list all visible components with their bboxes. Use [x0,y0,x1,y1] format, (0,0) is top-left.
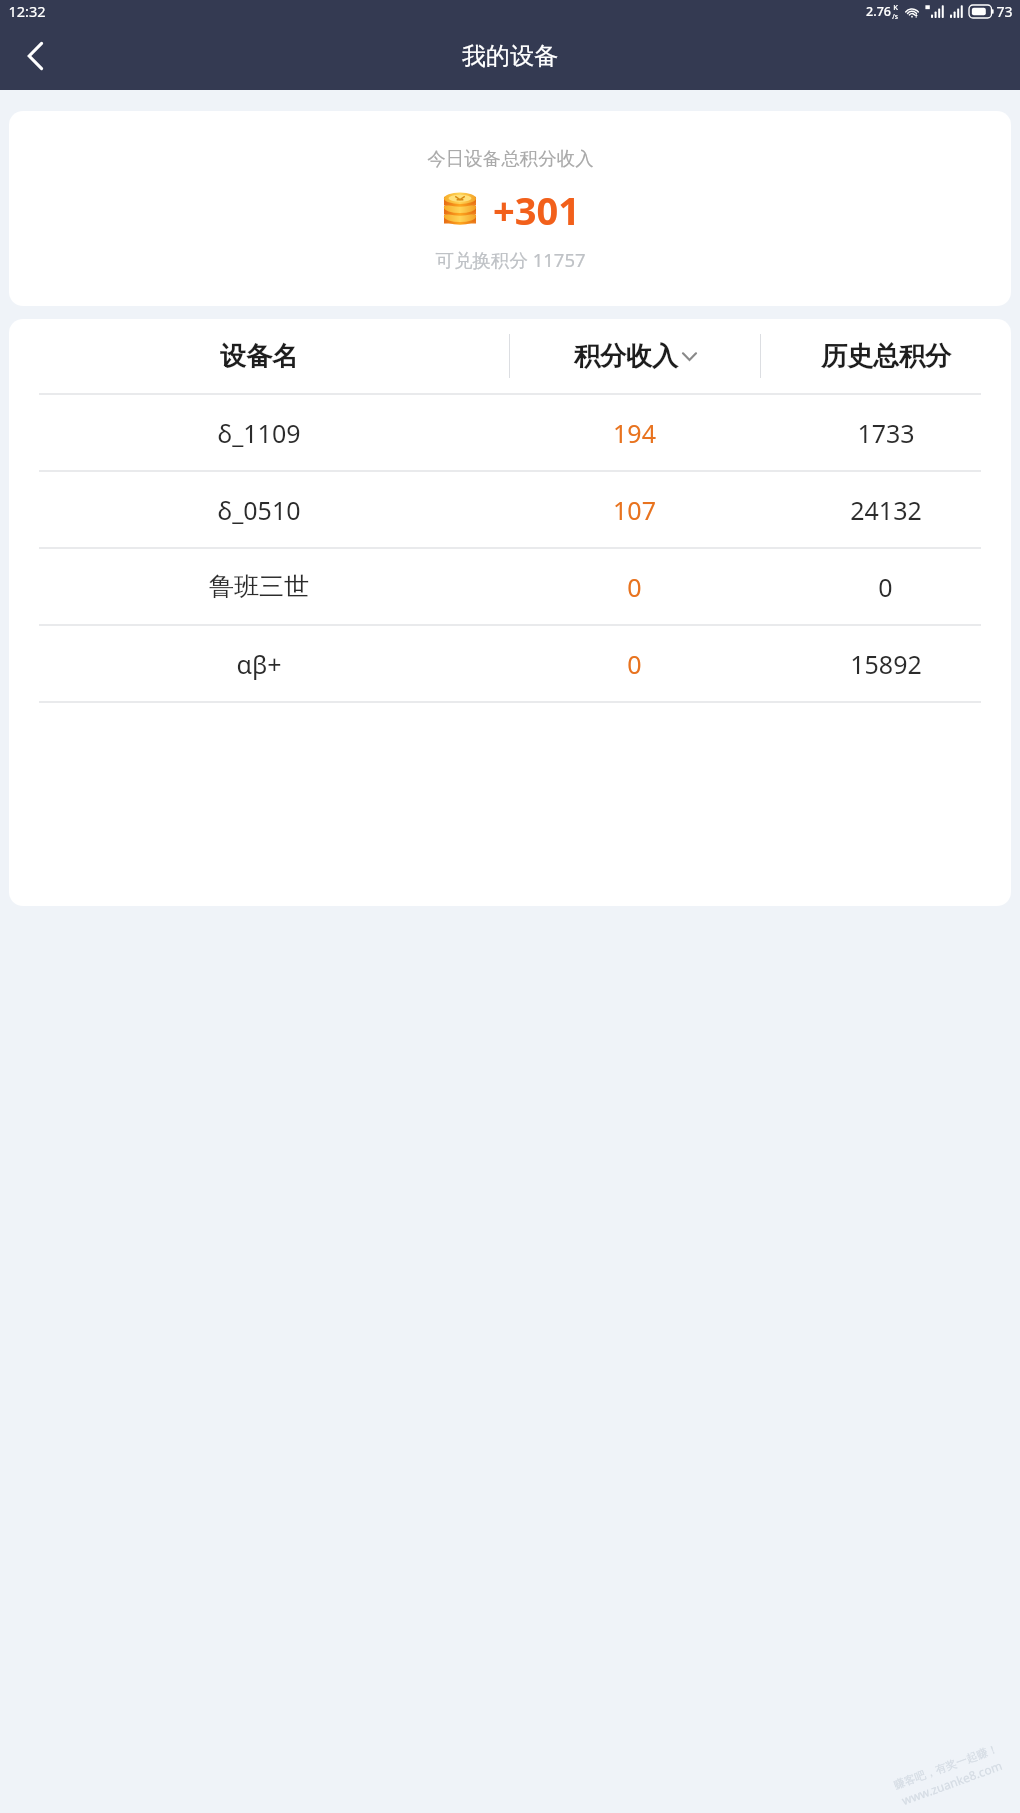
button[interactable]: αβ+ [9,626,1011,701]
button[interactable]: 今日设备总积分收入 [9,111,1011,306]
staticText: 我的设备 [462,41,558,71]
staticText: 鲁班三世 [209,571,309,602]
staticText: 24132 [850,493,922,527]
staticText: 今日设备总积分收入 [427,147,594,170]
staticText: 15892 [850,647,922,681]
staticText: 73 [996,2,1013,21]
staticText: 积分收入 [574,340,678,373]
staticText: 设备名 [220,340,298,373]
staticText: 0 [878,570,893,604]
staticText: 2.76 [866,3,891,20]
button[interactable]: δ_1109 [9,395,1011,470]
staticText: δ_0510 [217,493,301,527]
staticText: 1733 [857,416,915,450]
staticText: 0 [627,647,642,681]
staticText: αβ+ [236,647,282,681]
staticText: 107 [613,493,656,527]
staticText: 194 [613,416,656,450]
staticText: K [893,2,898,12]
staticText: /s [892,12,898,21]
button[interactable]: 鲁班三世 [9,549,1011,624]
button[interactable]: Back [12,32,60,80]
button[interactable]: δ_0510 [9,472,1011,547]
staticText: +301 [493,184,580,236]
staticText: 12:32 [8,1,46,21]
button[interactable]: 设备名 [9,319,1011,393]
staticText: www.zuanke8.com [899,1757,1004,1808]
staticText: 可兑换积分 11757 [435,247,586,272]
staticText: δ_1109 [217,416,301,450]
staticText: 0 [627,570,642,604]
staticText: 历史总积分 [821,340,951,373]
staticText: 赚客吧，有奖一起赚！ [892,1741,1000,1792]
